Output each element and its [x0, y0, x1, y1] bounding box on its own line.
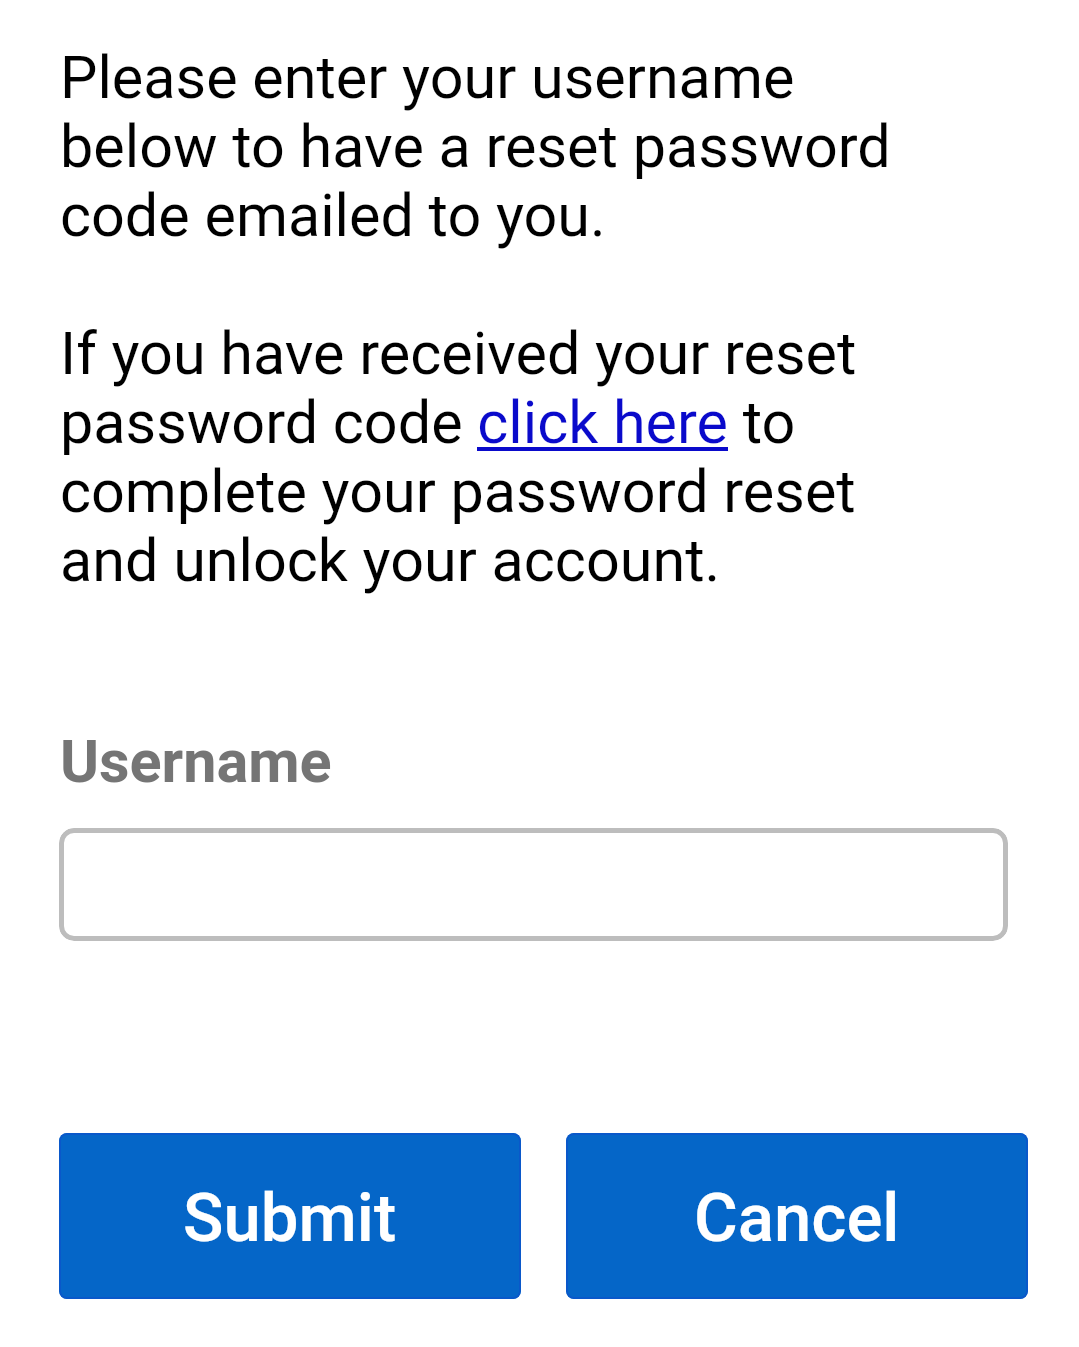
- button[interactable]: Submit: [59, 1133, 521, 1299]
- staticText: Username: [60, 727, 332, 796]
- button[interactable]: Cancel: [566, 1133, 1028, 1299]
- staticText: Submit: [183, 1179, 397, 1258]
- button[interactable]: click here: [476, 391, 729, 453]
- staticText: Cancel: [694, 1179, 900, 1258]
- staticText: Please enter your username below to have…: [60, 43, 891, 595]
- button[interactable]: Username text field: [59, 828, 1008, 941]
